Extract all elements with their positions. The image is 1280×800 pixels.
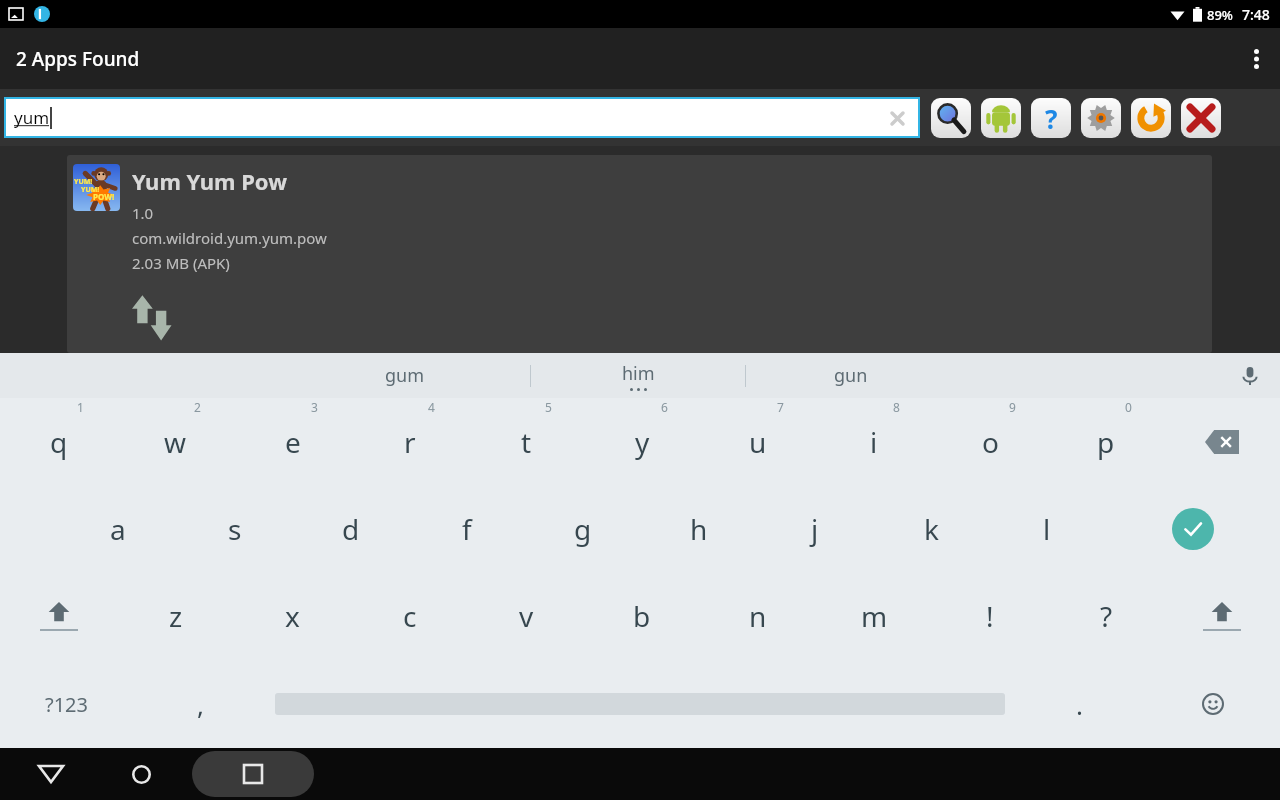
button[interactable]: o (932, 398, 1048, 485)
button[interactable]: him (531, 353, 745, 398)
button[interactable]: Backspace (1164, 398, 1280, 485)
button[interactable]: Enter (1105, 485, 1280, 572)
button[interactable]: gun (746, 353, 956, 398)
button[interactable]: Home (110, 748, 172, 800)
button[interactable]: z (117, 572, 234, 660)
button[interactable]: Help (1029, 96, 1073, 140)
button[interactable]: ?123 (0, 660, 133, 748)
button[interactable]: Voice input (1226, 353, 1274, 398)
button[interactable]: Close (1179, 96, 1223, 140)
button[interactable]: i (816, 398, 932, 485)
staticText: u (749, 423, 767, 461)
button[interactable]: h (641, 485, 757, 572)
button[interactable]: v (468, 572, 584, 660)
button[interactable]: yum (6, 99, 918, 136)
staticText: i (870, 423, 878, 461)
button[interactable]: Back (20, 748, 82, 800)
staticText: s (228, 510, 242, 548)
staticText: POW! (93, 191, 115, 202)
button[interactable]: x (234, 572, 351, 660)
button[interactable]: m (816, 572, 932, 660)
staticText: a (110, 510, 126, 548)
staticText: j (811, 510, 819, 548)
staticText: com.wildroid.yum.yum.pow (132, 228, 327, 248)
button[interactable]: Settings (1079, 96, 1123, 140)
button[interactable]: s (176, 485, 293, 572)
staticText: 8 (893, 399, 900, 415)
staticText: 4 (428, 399, 435, 415)
staticText: l (1043, 510, 1051, 548)
button[interactable]: q (0, 398, 117, 485)
button[interactable]: gum (280, 353, 530, 398)
staticText: 2.03 MB (APK) (132, 253, 230, 273)
staticText: 9 (1009, 399, 1016, 415)
button[interactable]: Shift right (1164, 572, 1280, 660)
button[interactable]: d (293, 485, 409, 572)
staticText: gum (385, 363, 425, 388)
staticText: m (861, 597, 888, 635)
button[interactable]: l (989, 485, 1105, 572)
button[interactable]: p (1048, 398, 1164, 485)
staticText: 2 (194, 399, 201, 415)
staticText: ?123 (45, 691, 88, 718)
button[interactable]: ? (1048, 572, 1164, 660)
button[interactable]: Space (267, 660, 1012, 748)
staticText: f (462, 510, 472, 548)
staticText: ? (1100, 597, 1113, 635)
staticText: h (690, 510, 708, 548)
staticText: 2 Apps Found (16, 46, 140, 72)
staticText: z (169, 597, 183, 635)
staticText: 6 (661, 399, 668, 415)
button[interactable]: j (757, 485, 873, 572)
button[interactable]: u (700, 398, 816, 485)
staticText: o (982, 423, 999, 461)
button[interactable]: r (351, 398, 468, 485)
staticText: 3 (311, 399, 318, 415)
staticText: x (285, 597, 300, 635)
staticText: t (521, 423, 532, 461)
button[interactable]: ! (932, 572, 1048, 660)
button[interactable]: y (584, 398, 700, 485)
staticText: him (622, 361, 655, 386)
button[interactable]: , (133, 660, 267, 748)
button[interactable]: Shift (0, 572, 117, 660)
staticText: d (342, 510, 360, 548)
staticText: g (574, 510, 592, 548)
staticText: 5 (545, 399, 552, 415)
button[interactable]: f (409, 485, 525, 572)
staticText: gun (834, 363, 868, 388)
staticText: 1.0 (132, 203, 154, 223)
button[interactable]: Clear search (880, 101, 914, 135)
staticText: Yum Yum Pow (132, 166, 287, 196)
staticText: y (635, 423, 650, 461)
staticText: YUM! (81, 185, 100, 195)
button[interactable]: Emoji (1146, 660, 1280, 748)
button[interactable]: a (59, 485, 176, 572)
staticText: e (285, 423, 301, 461)
staticText: , (197, 687, 204, 722)
staticText: k (924, 510, 939, 548)
button[interactable]: Recent apps (192, 751, 314, 797)
button[interactable]: Refresh (1129, 96, 1173, 140)
button[interactable]: k (873, 485, 989, 572)
staticText: ? (1045, 101, 1058, 135)
staticText: q (50, 423, 68, 461)
staticText: YUM! (74, 177, 93, 187)
button[interactable]: b (584, 572, 700, 660)
button[interactable]: c (351, 572, 468, 660)
button[interactable]: t (468, 398, 584, 485)
button[interactable]: n (700, 572, 816, 660)
staticText: p (1097, 423, 1115, 461)
button[interactable]: YUM! (67, 155, 1212, 353)
button[interactable]: . (1012, 660, 1146, 748)
staticText: . (1076, 687, 1083, 722)
button[interactable]: e (234, 398, 351, 485)
button[interactable]: Search (929, 96, 973, 140)
button[interactable]: Transfer (132, 291, 184, 343)
staticText: 0 (1125, 399, 1132, 415)
button[interactable]: g (525, 485, 641, 572)
button[interactable]: w (117, 398, 234, 485)
button[interactable]: More options (1232, 28, 1280, 89)
button[interactable]: Wildroid (979, 96, 1023, 140)
staticText: ! (986, 597, 994, 635)
